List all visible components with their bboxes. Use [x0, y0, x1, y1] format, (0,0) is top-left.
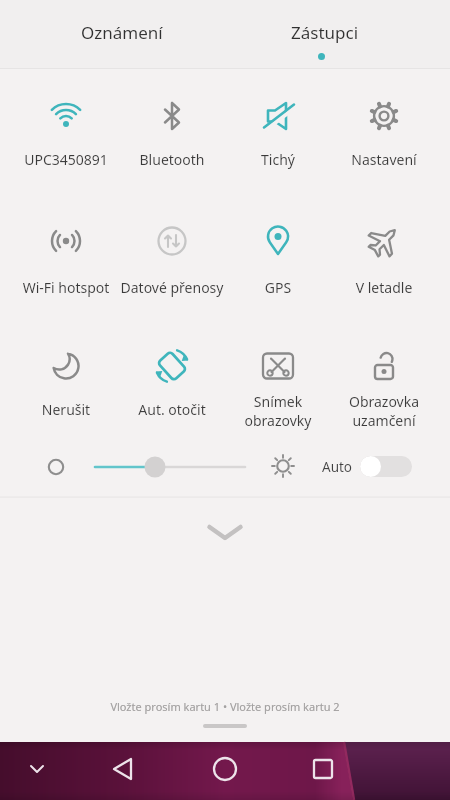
staticText: Datové přenosy — [116, 278, 228, 297]
button[interactable]: Snímek obrazovky — [222, 336, 334, 458]
button[interactable]: Bluetooth — [116, 86, 228, 208]
staticText: V letadle — [328, 278, 440, 297]
button[interactable]: Datové přenosy — [116, 211, 228, 333]
staticText: Tichý — [222, 150, 334, 169]
button[interactable]: UPC3450891 — [10, 86, 122, 208]
staticText: Zástupci — [291, 21, 359, 44]
staticText: Obrazovka uzamčení — [328, 392, 440, 430]
staticText: Snímek obrazovky — [222, 392, 334, 430]
button[interactable]: Zástupci — [255, 11, 395, 53]
button[interactable]: Wi-Fi hotspot — [10, 211, 122, 333]
button[interactable]: GPS — [222, 211, 334, 333]
button[interactable] — [301, 747, 345, 791]
staticText: Aut. otočit — [116, 400, 228, 419]
button[interactable] — [20, 752, 54, 790]
button[interactable] — [360, 456, 412, 477]
staticText: Nastavení — [328, 150, 440, 169]
staticText: Oznámení — [81, 21, 163, 44]
button[interactable]: Tichý — [222, 86, 334, 208]
staticText: Vložte prosím kartu 1 • Vložte prosím ka… — [0, 699, 450, 714]
button[interactable]: V letadle — [328, 211, 440, 333]
button[interactable] — [103, 749, 143, 793]
button[interactable] — [88, 450, 253, 484]
button[interactable]: Aut. otočit — [116, 336, 228, 458]
staticText: Auto — [322, 458, 353, 476]
button[interactable]: Oznámení — [52, 11, 192, 53]
staticText: Nerušit — [10, 400, 122, 419]
button[interactable] — [195, 517, 255, 547]
button[interactable]: Obrazovka uzamčení — [328, 336, 440, 458]
staticText: UPC3450891 — [10, 150, 122, 169]
staticText: Bluetooth — [116, 150, 228, 169]
button[interactable]: Nastavení — [328, 86, 440, 208]
staticText: Wi-Fi hotspot — [10, 278, 122, 297]
staticText: GPS — [222, 278, 334, 297]
button[interactable] — [203, 747, 247, 791]
button[interactable]: Nerušit — [10, 336, 122, 458]
